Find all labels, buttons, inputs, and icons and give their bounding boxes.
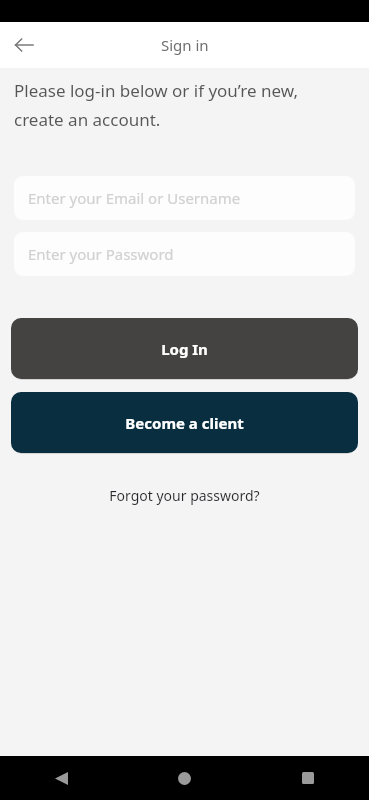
- button[interactable]: Enter your Email or Username: [14, 176, 355, 220]
- staticText: Please log-in below or if you’re new, cr…: [14, 79, 359, 131]
- button[interactable]: Enter your Password: [14, 232, 355, 276]
- staticText: Enter your Password: [28, 244, 174, 264]
- button[interactable]: Log In: [11, 318, 358, 379]
- staticText: Become a client: [125, 413, 244, 433]
- staticText: Log In: [161, 339, 208, 359]
- button[interactable]: Recent apps: [246, 756, 369, 800]
- staticText: Enter your Email or Username: [28, 188, 241, 208]
- button[interactable]: Become a client: [11, 392, 358, 453]
- button[interactable]: Back: [0, 756, 123, 800]
- button[interactable]: Back: [6, 27, 42, 63]
- button[interactable]: Forgot your password?: [101, 482, 268, 509]
- staticText: Sign in: [161, 35, 209, 55]
- button[interactable]: Home: [123, 756, 246, 800]
- staticText: Forgot your password?: [109, 486, 260, 505]
